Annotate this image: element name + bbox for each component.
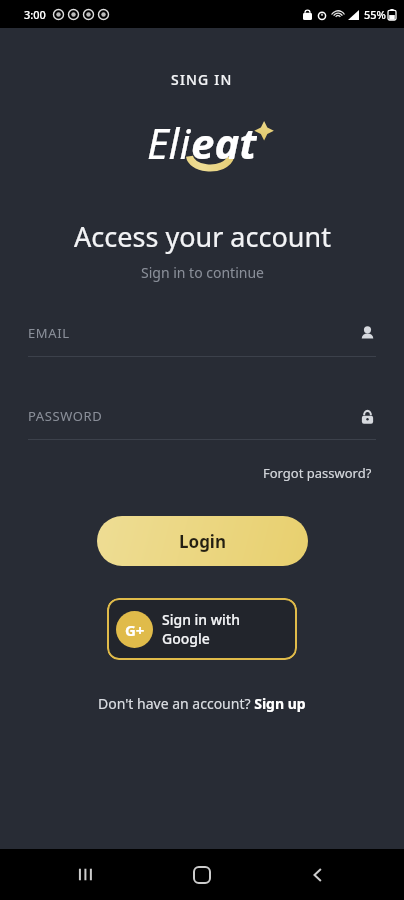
button[interactable]: Don't have an account? Sign up xyxy=(94,690,310,717)
staticText: Forgot password? xyxy=(263,464,372,482)
staticText: PASSWORD xyxy=(28,407,103,425)
staticText: SING IN xyxy=(171,70,233,89)
button[interactable]: Back xyxy=(288,849,348,900)
staticText: 3:00 xyxy=(24,7,46,22)
button[interactable]: Login xyxy=(97,516,308,566)
button[interactable]: Recent apps xyxy=(56,849,116,900)
staticText: Sign in with Google xyxy=(162,610,288,648)
staticText: EMAIL xyxy=(28,324,70,342)
button[interactable]: G+ xyxy=(107,598,297,660)
staticText: Eli xyxy=(147,114,191,170)
staticText: Access your account xyxy=(74,218,331,255)
staticText: eat xyxy=(191,114,257,170)
staticText: Login xyxy=(179,530,227,553)
staticText: Don't have an account? Sign up xyxy=(98,694,306,713)
staticText: Sign in to continue xyxy=(141,263,264,282)
staticText: G+ xyxy=(125,620,145,640)
button[interactable]: Forgot password? xyxy=(259,460,376,486)
staticText: 55% xyxy=(364,7,386,22)
button[interactable]: PASSWORD xyxy=(28,403,376,440)
button[interactable]: EMAIL xyxy=(28,320,376,357)
button[interactable]: Home xyxy=(172,849,232,900)
